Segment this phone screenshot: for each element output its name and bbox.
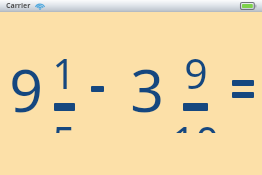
button[interactable]: Battery full	[240, 2, 257, 10]
staticText: 10	[172, 113, 219, 133]
staticText: 3	[130, 49, 164, 129]
staticText: 9	[184, 45, 208, 101]
staticText: 9	[9, 49, 43, 129]
staticText: Carrier	[6, 1, 31, 11]
staticText: 5	[52, 113, 76, 133]
staticText: 1	[52, 45, 76, 101]
button[interactable]: Wi-Fi signal	[35, 2, 45, 10]
